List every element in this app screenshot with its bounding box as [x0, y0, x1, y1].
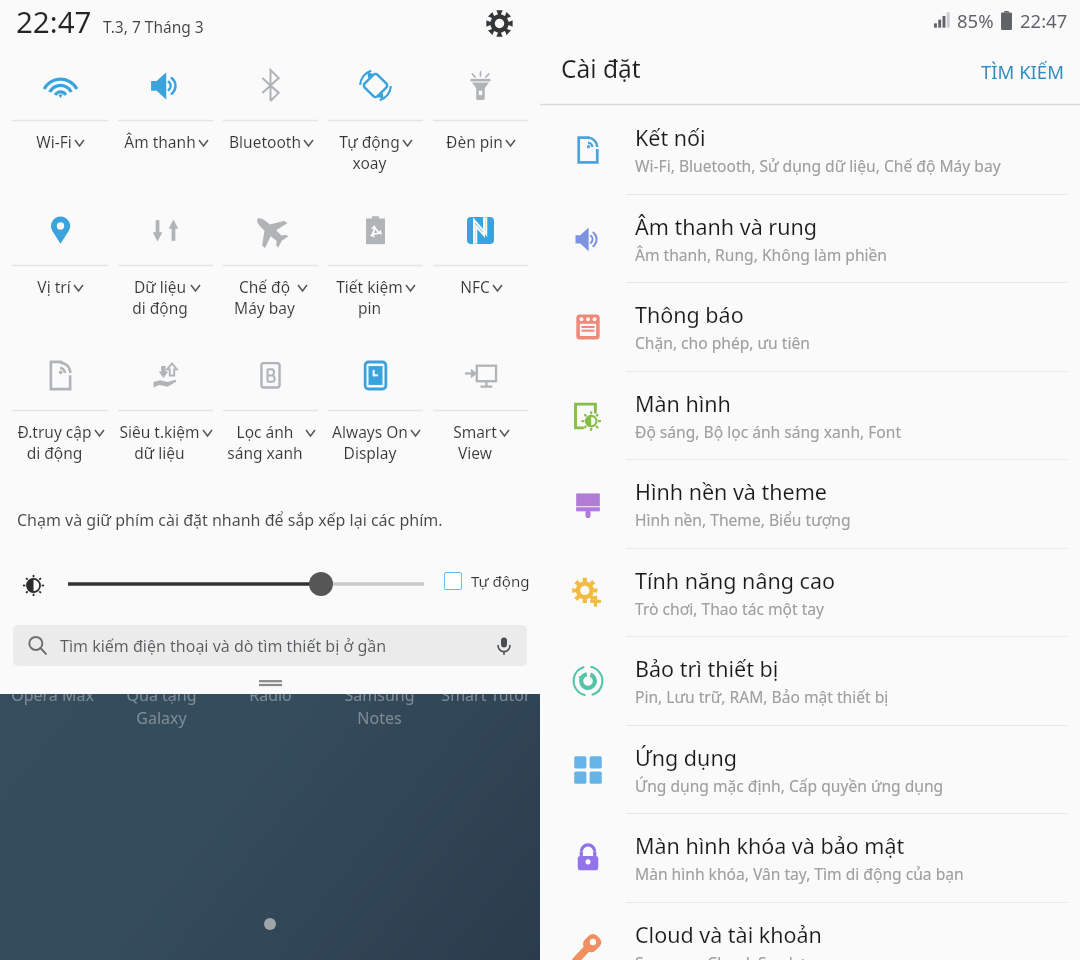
button[interactable]: Ứng dụng [540, 725, 1080, 814]
staticText: 85% [957, 8, 994, 33]
staticText: Tự động [471, 571, 530, 591]
staticText: Hình nền, Theme, Biểu tượng [635, 509, 851, 530]
button[interactable]: NFC [428, 197, 533, 342]
button[interactable]: Đèn pin [428, 52, 533, 197]
staticText: Tìm kiếm điện thoại và dò tìm thiết bị ở… [60, 635, 387, 657]
button[interactable]: Thông báo [540, 282, 1080, 371]
button[interactable]: Dữ liệu di động [113, 197, 218, 342]
staticText: Chế độ Máy bay [234, 276, 295, 319]
staticText: Smart Tutor [441, 684, 531, 706]
button[interactable]: Chế độ Máy bay [218, 197, 323, 342]
button[interactable]: Close quick settings [235, 672, 305, 694]
button[interactable]: Kết nối [540, 105, 1080, 194]
staticText: Lọc ánh sáng xanh [227, 421, 303, 464]
staticText: Tính năng nâng cao [635, 566, 835, 595]
button[interactable]: Siêu t.kiệm dữ liệu [113, 342, 218, 487]
button[interactable]: Voice search [481, 625, 527, 666]
staticText: T.3, 7 Tháng 3 [103, 16, 204, 37]
staticText: Màn hình khóa, Vân tay, Tìm di động của … [635, 863, 964, 884]
button[interactable]: Tiết kiệm pin [323, 197, 428, 342]
staticText: Always On Display [332, 421, 408, 464]
staticText: Bảo trì thiết bị [635, 654, 779, 683]
button[interactable]: Hình nền và theme [540, 459, 1080, 548]
button[interactable]: Tính năng nâng cao [540, 548, 1080, 637]
staticText: Dữ liệu di động [132, 276, 188, 319]
staticText: Màn hình [635, 389, 731, 418]
button[interactable]: Settings [477, 1, 521, 45]
staticText: Cloud và tài khoản [635, 920, 822, 949]
staticText: Âm thanh [124, 131, 196, 152]
button[interactable]: Đ.truy cập di động [7, 342, 113, 487]
staticText: Wi-Fi, Bluetooth, Sử dụng dữ liệu, Chế đ… [635, 155, 1001, 176]
button[interactable]: Màn hình khóa và bảo mật [540, 813, 1080, 902]
staticText: Đ.truy cập di động [17, 421, 92, 464]
button[interactable]: Brightness [16, 567, 51, 601]
button[interactable]: Vị trí [7, 197, 113, 342]
staticText: Quà tặng Galaxy [126, 684, 197, 729]
staticText: Đèn pin [446, 131, 503, 152]
button[interactable]: Màn hình [540, 371, 1080, 460]
button[interactable]: Âm thanh [113, 52, 218, 197]
staticText: Thông báo [635, 300, 744, 329]
staticText: Tự động xoay [339, 131, 400, 174]
staticText: Opera Max [11, 684, 94, 706]
staticText: Smart View [453, 421, 497, 464]
staticText: Wi-Fi [36, 131, 72, 152]
staticText: NFC [460, 276, 490, 297]
button[interactable]: TÌM KIẾM [963, 45, 1080, 100]
staticText: Pin, Lưu trữ, RAM, Bảo mật thiết bị [635, 686, 889, 707]
button[interactable]: Smart View [428, 342, 533, 487]
button[interactable]: Bluetooth [218, 52, 323, 197]
staticText: Độ sáng, Bộ lọc ánh sáng xanh, Font [635, 421, 902, 442]
staticText: Chặn, cho phép, ưu tiên [635, 332, 810, 353]
staticText: Ứng dụng mặc định, Cấp quyền ứng dụng [635, 775, 944, 796]
staticText: Tiết kiệm pin [336, 276, 403, 319]
staticText: Âm thanh và rung [635, 212, 817, 241]
staticText: Hình nền và theme [635, 477, 827, 506]
staticText: Samsung Cloud, Sao lưu [635, 952, 814, 960]
staticText: Vị trí [37, 276, 71, 297]
staticText: Radio [249, 684, 292, 706]
button[interactable]: Tự động [444, 571, 530, 591]
button[interactable]: Tìm kiếm điện thoại và dò tìm thiết bị ở… [13, 625, 527, 666]
button[interactable]: Always On Display [323, 342, 428, 487]
staticText: Kết nối [635, 123, 706, 152]
staticText: Cài đặt [561, 52, 641, 85]
button[interactable]: Cloud và tài khoản [540, 902, 1080, 960]
staticText: Ứng dụng [635, 743, 737, 772]
staticText: Trò chơi, Thao tác một tay [635, 598, 824, 619]
staticText: Màn hình khóa và bảo mật [635, 831, 905, 860]
staticText: Chạm và giữ phím cài đặt nhanh để sắp xế… [17, 509, 443, 531]
staticText: Bluetooth [229, 131, 301, 152]
staticText: 22:47 [16, 1, 92, 41]
button[interactable]: Bảo trì thiết bị [540, 636, 1080, 725]
staticText: Siêu t.kiệm dữ liệu [119, 421, 200, 464]
staticText: Âm thanh, Rung, Không làm phiền [635, 244, 888, 265]
button[interactable]: Wi-Fi [7, 52, 113, 197]
staticText: TÌM KIẾM [981, 59, 1064, 84]
button[interactable]: Tự động xoay [323, 52, 428, 197]
staticText: 22:47 [1020, 8, 1068, 33]
staticText: Samsung Notes [344, 684, 415, 729]
button[interactable]: Âm thanh và rung [540, 194, 1080, 283]
button[interactable]: Lọc ánh sáng xanh [218, 342, 323, 487]
